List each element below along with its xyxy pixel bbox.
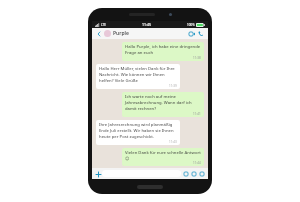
staticText: 11:45 [142,22,151,27]
button[interactable]: Ihre Jahresrechnung wird planmäßig Ende … [96,120,180,145]
staticText: 11:44 [193,161,201,165]
staticText: 11:39 [169,84,177,88]
staticText: LTE [101,23,106,27]
button[interactable]: Voice message [198,170,206,178]
staticText: Hallo Purple, ich habe eine dringende Fr… [125,44,201,56]
staticText: Ich warte noch auf meine Jahresabrechnun… [125,94,201,112]
button[interactable]: Ich warte noch auf meine Jahresabrechnun… [122,92,204,117]
staticText: 11:43 [169,140,177,144]
button[interactable]: Video call [187,29,196,38]
button[interactable]: Hallo Herr Müller, vielen Dank für Ihre … [96,64,180,89]
staticText: Vielen Dank für eure schnelle Antwort 😊 [125,150,201,161]
button[interactable]: Purple [113,30,129,37]
button[interactable]: Back [95,30,103,38]
staticText: 100% [187,23,195,27]
button[interactable]: Hallo Purple, ich habe eine dringende Fr… [122,42,204,61]
staticText: Ihre Jahresrechnung wird planmäßig Ende … [99,122,177,140]
button[interactable]: Voice call [196,29,205,38]
button[interactable]: Attach [94,170,102,178]
staticText: 11:38 [193,56,201,60]
button[interactable]: Sticker [182,170,190,178]
staticText: Hallo Herr Müller, vielen Dank für Ihre … [99,66,177,84]
button[interactable]: Camera [190,170,198,178]
button[interactable]: Contact avatar [104,30,111,37]
button[interactable]: Vielen Dank für eure schnelle Antwort 😊 [122,148,204,166]
staticText: 11:41 [193,112,201,116]
